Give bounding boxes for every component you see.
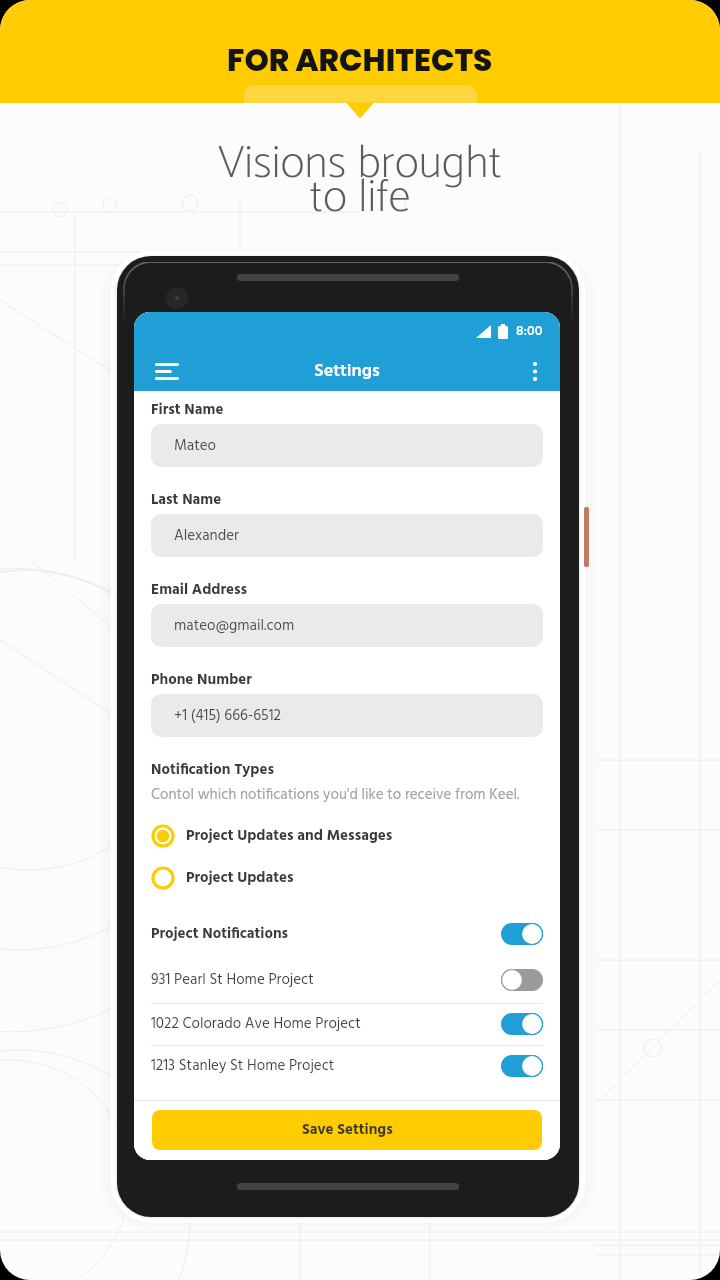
staticText: Mateo bbox=[174, 434, 217, 458]
staticText: Email Address bbox=[151, 578, 248, 602]
button[interactable]: Project Notifications bbox=[151, 918, 543, 950]
staticText: Project Notifications bbox=[151, 922, 501, 946]
staticText: 1022 Colorado Ave Home Project bbox=[151, 1012, 501, 1036]
button[interactable]: Toggle 931 Pearl St Home Project bbox=[501, 969, 543, 991]
staticText: Save Settings bbox=[302, 1118, 393, 1142]
staticText: FOR ARCHITECTS bbox=[227, 38, 493, 81]
button[interactable]: 931 Pearl St Home Project bbox=[151, 964, 543, 996]
button[interactable]: Alexander bbox=[151, 514, 543, 557]
button[interactable]: Mateo bbox=[151, 424, 543, 467]
button[interactable]: Save Settings bbox=[152, 1110, 542, 1150]
staticText: 8:00 bbox=[516, 320, 543, 342]
staticText: Phone Number bbox=[151, 668, 252, 692]
button[interactable]: More options bbox=[518, 354, 552, 388]
button[interactable]: Toggle Project Notifications bbox=[501, 923, 543, 945]
staticText: Alexander bbox=[174, 524, 239, 548]
button[interactable]: Project Updates bbox=[151, 863, 543, 893]
staticText: Last Name bbox=[151, 488, 222, 512]
staticText: First Name bbox=[151, 398, 224, 422]
staticText: 931 Pearl St Home Project bbox=[151, 968, 501, 992]
staticText: Project Updates and Messages bbox=[186, 824, 393, 848]
staticText: mateo@gmail.com bbox=[174, 614, 295, 638]
button[interactable]: 1022 Colorado Ave Home Project bbox=[151, 1008, 543, 1040]
button[interactable]: Toggle 1022 Colorado Ave Home Project bbox=[501, 1013, 543, 1035]
button[interactable]: Project Updates and Messages bbox=[151, 821, 543, 851]
button[interactable]: mateo@gmail.com bbox=[151, 604, 543, 647]
staticText: Notification Types bbox=[151, 758, 275, 782]
button[interactable]: Open navigation menu bbox=[146, 354, 188, 388]
button[interactable]: +1 (415) 666-6512 bbox=[151, 694, 543, 737]
staticText: Project Updates bbox=[186, 866, 294, 890]
staticText: Contol which notifications you'd like to… bbox=[151, 783, 520, 807]
staticText: Visions brought to life bbox=[0, 126, 720, 236]
staticText: +1 (415) 666-6512 bbox=[174, 704, 282, 728]
button[interactable]: Toggle 1213 Stanley St Home Project bbox=[501, 1055, 543, 1077]
staticText: 1213 Stanley St Home Project bbox=[151, 1054, 501, 1078]
button[interactable]: 1213 Stanley St Home Project bbox=[151, 1050, 543, 1082]
staticText: Settings bbox=[134, 357, 560, 386]
